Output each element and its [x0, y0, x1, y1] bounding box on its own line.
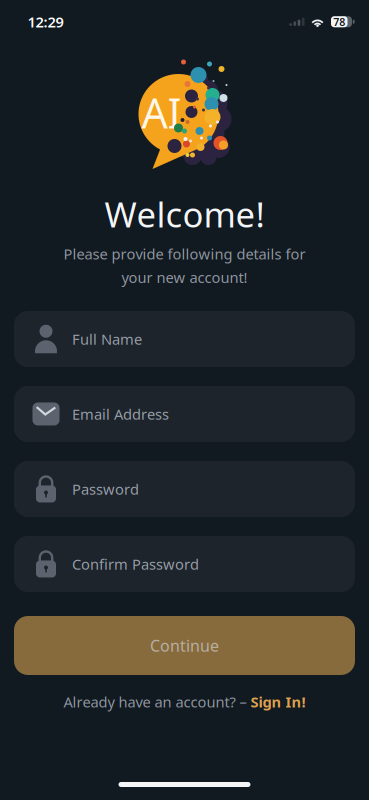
- staticText: Continue: [150, 635, 219, 656]
- staticText: Welcome!: [104, 191, 264, 237]
- staticText: Email Address: [72, 404, 169, 424]
- staticText: your new account!: [121, 267, 247, 287]
- staticText: Full Name: [72, 329, 142, 349]
- button[interactable]: Full Name: [14, 311, 355, 367]
- staticText: Please provide following details for: [63, 244, 305, 263]
- staticText: 78: [333, 15, 345, 29]
- staticText: Password: [72, 479, 139, 499]
- staticText: AI: [141, 85, 181, 140]
- staticText: Sign In!: [250, 692, 305, 711]
- button[interactable]: Continue: [14, 616, 355, 675]
- staticText: 12:29: [27, 12, 63, 31]
- staticText: Confirm Password: [72, 554, 199, 574]
- button[interactable]: Email Address: [14, 386, 355, 442]
- button[interactable]: Sign In!: [250, 692, 305, 711]
- button[interactable]: Password: [14, 461, 355, 517]
- staticText: Already have an account? –: [63, 692, 250, 711]
- button[interactable]: Confirm Password: [14, 536, 355, 592]
